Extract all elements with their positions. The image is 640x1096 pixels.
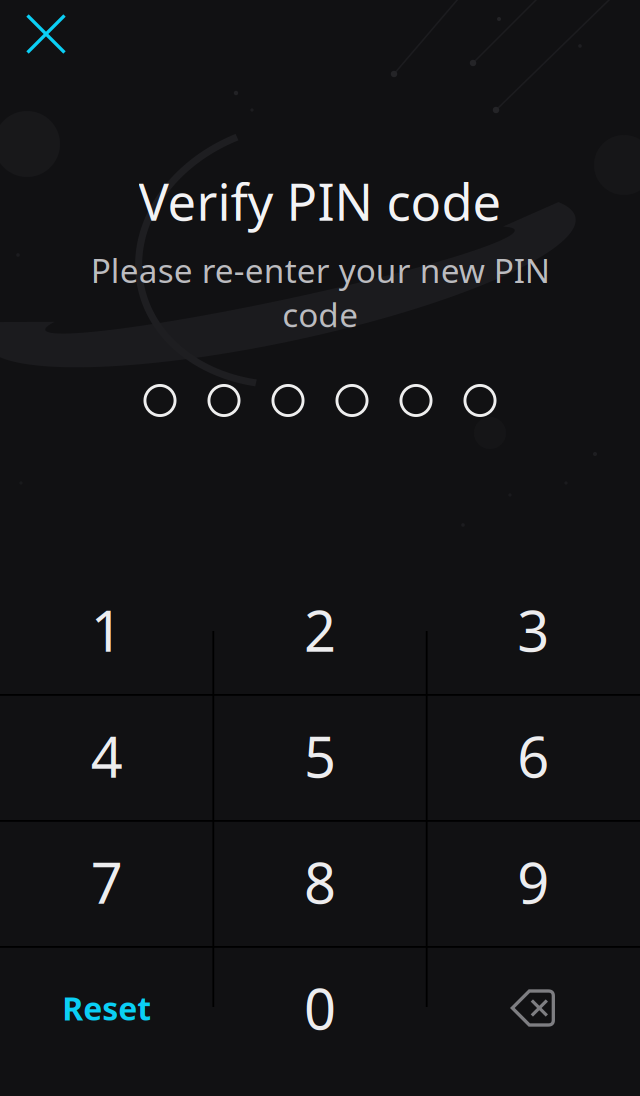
button[interactable]: 0 — [213, 945, 427, 1071]
staticText: 8 — [304, 845, 336, 919]
staticText: 5 — [304, 719, 336, 793]
button[interactable]: 8 — [213, 819, 427, 945]
button[interactable]: 1 — [0, 567, 213, 693]
button[interactable]: 3 — [427, 567, 640, 693]
button[interactable]: Close — [10, 1, 82, 67]
button[interactable]: Reset — [0, 945, 213, 1071]
staticText: 4 — [91, 719, 123, 793]
staticText: 3 — [517, 593, 549, 667]
button[interactable]: 6 — [427, 693, 640, 819]
staticText: 1 — [91, 593, 123, 667]
staticText: 7 — [91, 845, 123, 919]
staticText: Please re-enter your new PIN code — [90, 248, 549, 336]
button[interactable]: 2 — [213, 567, 427, 693]
staticText: 0 — [304, 971, 336, 1045]
staticText: 9 — [517, 845, 549, 919]
staticText: Verify PIN code — [138, 167, 501, 235]
staticText: 6 — [517, 719, 549, 793]
button[interactable]: 7 — [0, 819, 213, 945]
button[interactable]: 5 — [213, 693, 427, 819]
staticText: 2 — [304, 593, 336, 667]
staticText: Reset — [62, 987, 151, 1029]
button[interactable]: 4 — [0, 693, 213, 819]
button[interactable]: Delete — [427, 945, 640, 1071]
button[interactable]: 9 — [427, 819, 640, 945]
